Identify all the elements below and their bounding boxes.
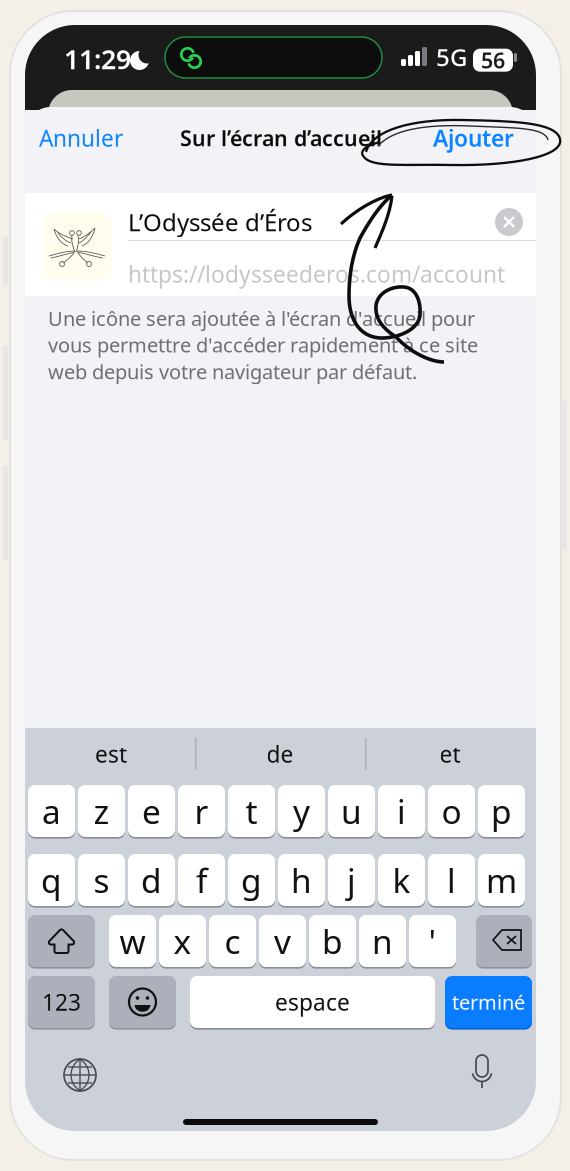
button[interactable]: v — [259, 915, 306, 967]
button[interactable]: u — [328, 785, 375, 837]
button[interactable]: i — [378, 785, 425, 837]
staticText: r — [194, 789, 208, 833]
button[interactable]: r — [178, 785, 225, 837]
staticText: y — [293, 789, 310, 833]
staticText: 56 — [481, 46, 505, 74]
button[interactable]: b — [309, 915, 356, 967]
staticText: d — [141, 858, 162, 902]
button[interactable]: w — [109, 915, 156, 967]
staticText: ' — [428, 919, 436, 963]
staticText: 123 — [42, 987, 81, 1017]
staticText: n — [372, 919, 393, 963]
staticText: Ajouter — [433, 123, 514, 153]
staticText: z — [93, 789, 109, 833]
button[interactable]: y — [278, 785, 325, 837]
staticText: h — [291, 858, 312, 902]
staticText: c — [224, 919, 240, 963]
staticText: 11:29 — [64, 41, 131, 77]
button[interactable]: a — [28, 785, 75, 837]
staticText: Une icône sera ajoutée à l'écran d'accue… — [48, 305, 478, 385]
staticText: et — [439, 739, 460, 769]
staticText: p — [491, 789, 512, 833]
button[interactable]: Majuscule — [28, 915, 95, 967]
button[interactable]: h — [278, 854, 325, 906]
staticText: terminé — [452, 989, 525, 1015]
staticText: m — [486, 858, 517, 902]
staticText: Annuler — [39, 123, 123, 153]
button[interactable]: j — [328, 854, 375, 906]
staticText: w — [119, 919, 145, 963]
staticText: de — [266, 739, 293, 769]
button[interactable]: d — [128, 854, 175, 906]
staticText: b — [322, 919, 343, 963]
button[interactable]: f — [178, 854, 225, 906]
button[interactable]: ' — [409, 915, 456, 967]
staticText: a — [42, 789, 61, 833]
staticText: 5G — [436, 41, 467, 73]
button[interactable]: x — [159, 915, 206, 967]
button[interactable]: 123 — [28, 976, 95, 1028]
staticText: L’Odyssée d’Éros — [128, 206, 312, 238]
staticText: x — [173, 919, 191, 963]
staticText: u — [341, 789, 362, 833]
button[interactable]: Effacer le texte — [495, 208, 523, 236]
button[interactable]: Dictée — [466, 1053, 498, 1093]
staticText: Sur l’écran d’accueil — [180, 124, 382, 152]
button[interactable]: e — [128, 785, 175, 837]
staticText: v — [274, 919, 291, 963]
button[interactable]: espace — [190, 976, 435, 1028]
staticText: e — [142, 789, 161, 833]
button[interactable]: Supprimer — [476, 915, 532, 967]
staticText: q — [41, 858, 62, 902]
button[interactable]: Changer de clavier — [62, 1057, 98, 1093]
button[interactable]: g — [228, 854, 275, 906]
button[interactable]: est — [28, 728, 194, 780]
staticText: f — [196, 858, 207, 902]
button[interactable]: terminé — [445, 976, 532, 1028]
button[interactable]: t — [228, 785, 275, 837]
button[interactable]: q — [28, 854, 75, 906]
button[interactable]: c — [209, 915, 256, 967]
staticText: l — [447, 858, 456, 902]
staticText: i — [397, 789, 406, 833]
button[interactable]: et — [367, 728, 533, 780]
staticText: j — [347, 858, 356, 902]
button[interactable]: de — [197, 728, 363, 780]
button[interactable]: l — [428, 854, 475, 906]
staticText: g — [241, 858, 262, 902]
staticText: s — [93, 858, 109, 902]
staticText: o — [441, 789, 461, 833]
button[interactable]: n — [359, 915, 406, 967]
staticText: espace — [275, 987, 350, 1017]
button[interactable]: k — [378, 854, 425, 906]
staticText: k — [392, 858, 410, 902]
button[interactable]: Annuler — [39, 116, 163, 160]
button[interactable]: p — [478, 785, 525, 837]
button[interactable]: m — [478, 854, 525, 906]
button[interactable]: Ajouter — [395, 116, 514, 160]
button[interactable]: s — [78, 854, 125, 906]
staticText: t — [245, 789, 257, 833]
staticText: https://lodysseederos.com/account — [128, 259, 505, 289]
button[interactable]: o — [428, 785, 475, 837]
staticText: est — [95, 739, 127, 769]
button[interactable]: z — [78, 785, 125, 837]
button[interactable]: Emoji — [109, 976, 176, 1028]
